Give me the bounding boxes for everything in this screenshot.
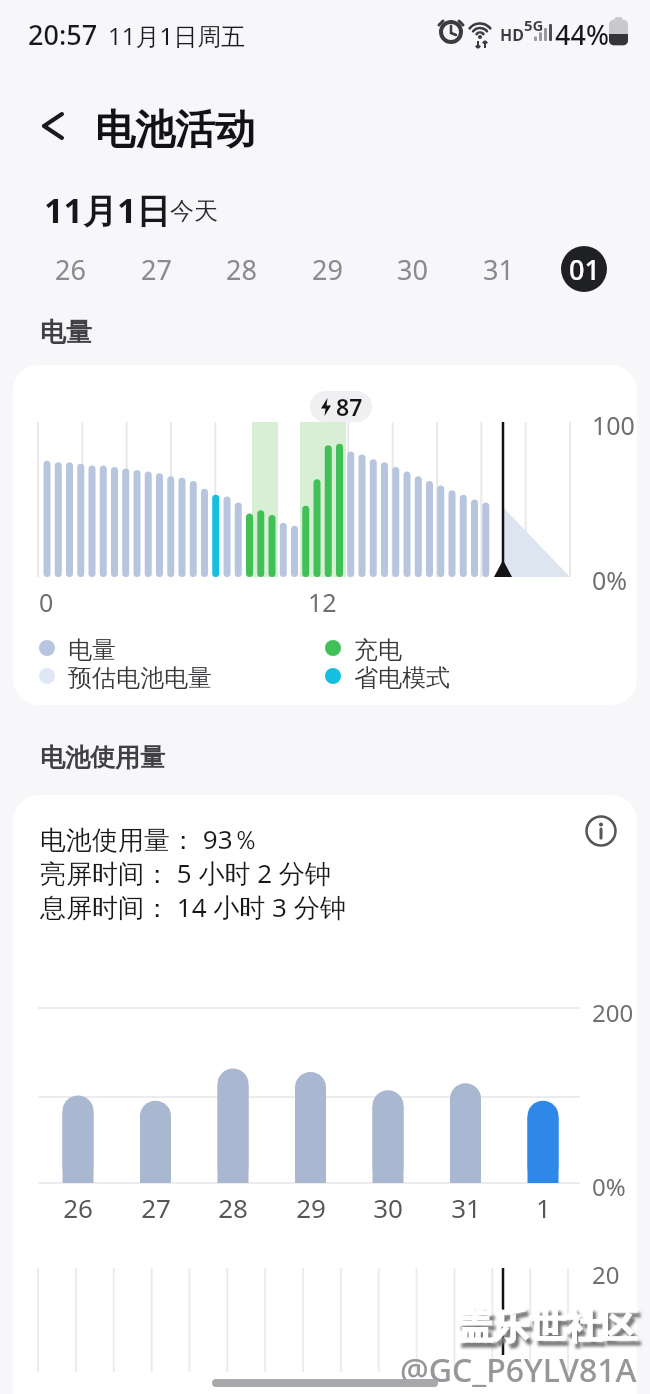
staticText: 29 — [312, 251, 343, 288]
staticText: 20 — [592, 1258, 620, 1291]
staticText: 26 — [55, 251, 86, 288]
staticText: 电量 — [40, 316, 92, 349]
staticText: 电池使用量 — [40, 742, 165, 773]
button[interactable]: 01 — [561, 246, 607, 292]
button[interactable] — [28, 100, 80, 152]
staticText: 200 — [592, 996, 634, 1029]
button[interactable] — [583, 813, 619, 849]
staticText: HD — [500, 24, 524, 46]
staticText: 电量 — [68, 635, 116, 665]
staticText: 28 — [226, 251, 257, 288]
staticText: 盖乐世社区 — [457, 1303, 637, 1348]
staticText: 100 — [592, 408, 635, 442]
staticText: 30 — [397, 251, 428, 288]
staticText: 预估电池电量 — [68, 663, 212, 693]
staticText: 今天 — [170, 196, 218, 226]
button[interactable]: 29 — [304, 246, 350, 292]
staticText: 电池使用量： 93％ — [40, 821, 259, 857]
button[interactable]: 31 — [475, 246, 521, 292]
staticText: 30 — [373, 1190, 403, 1225]
staticText: 11月1日 — [44, 187, 171, 233]
button[interactable]: 30 — [389, 246, 435, 292]
staticText: 省电模式 — [354, 663, 450, 693]
staticText: 电池活动 — [95, 104, 255, 154]
button[interactable]: 27 — [133, 246, 179, 292]
button[interactable]: 26 — [47, 246, 93, 292]
staticText: 29 — [296, 1190, 326, 1225]
staticText: 87 — [336, 391, 363, 422]
staticText: 5G — [524, 15, 544, 35]
staticText: 1 — [536, 1190, 551, 1225]
staticText: 27 — [141, 1190, 171, 1225]
staticText: 28 — [218, 1190, 248, 1225]
staticText: 31 — [451, 1190, 481, 1225]
staticText: 充电 — [354, 635, 402, 665]
staticText: 0% — [592, 563, 628, 597]
staticText: 亮屏时间： 5 小时 2 分钟 — [40, 855, 331, 891]
staticText: 0 — [39, 585, 54, 619]
staticText: 26 — [63, 1190, 93, 1225]
staticText: 11月1日周五 — [108, 19, 246, 52]
staticText: 息屏时间： 14 小时 3 分钟 — [40, 889, 346, 925]
staticText: @GC_P6YLV81A — [400, 1348, 637, 1392]
staticText: 31 — [483, 251, 514, 288]
staticText: 0% — [592, 1170, 626, 1203]
staticText: 01 — [569, 251, 600, 288]
button[interactable]: 28 — [218, 246, 264, 292]
staticText: 44% — [555, 16, 609, 53]
staticText: 12 — [308, 585, 337, 619]
staticText: 20:57 — [28, 16, 98, 53]
staticText: 27 — [141, 251, 172, 288]
